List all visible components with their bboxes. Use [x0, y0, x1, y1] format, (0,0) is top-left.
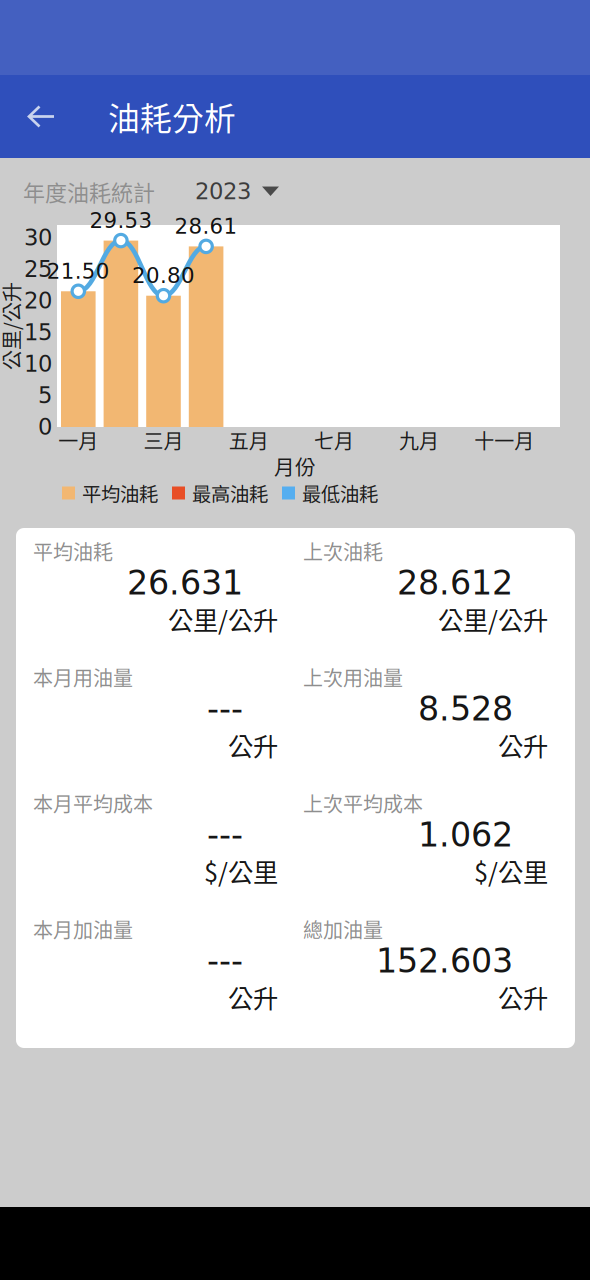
staticText: 28.61	[175, 214, 238, 239]
staticText: 一月	[58, 425, 98, 454]
staticText: 平均油耗	[33, 536, 113, 565]
staticText: 公里/公升	[0, 311, 55, 340]
staticText: 三月	[143, 425, 183, 454]
staticText: 29.53	[89, 208, 152, 233]
staticText: 公升	[498, 727, 548, 763]
staticText: 十一月	[474, 425, 534, 454]
staticText: 30	[24, 224, 52, 251]
staticText: 上次用油量	[303, 662, 403, 691]
staticText: 21.50	[47, 259, 110, 284]
staticText: 七月	[314, 425, 354, 454]
button[interactable]: 2023	[155, 165, 293, 217]
staticText: 最低油耗	[302, 479, 378, 507]
staticText: 公里/公升	[168, 601, 278, 637]
staticText: 九月	[399, 425, 439, 454]
staticText: 上次油耗	[303, 536, 383, 565]
staticText: 總加油量	[303, 914, 383, 943]
staticText: 20.80	[132, 263, 195, 288]
staticText: 月份	[274, 451, 316, 481]
staticText: 2023	[195, 178, 251, 205]
staticText: 28.612	[397, 564, 513, 602]
staticText: 26.631	[127, 564, 243, 602]
staticText: ---	[207, 690, 243, 728]
staticText: 15	[24, 319, 52, 345]
staticText: 公升	[228, 727, 278, 763]
staticText: 本月平均成本	[33, 788, 153, 817]
staticText: 1.062	[418, 816, 513, 854]
staticText: 20	[24, 288, 52, 314]
staticText: 0	[38, 414, 52, 440]
staticText: ---	[207, 942, 243, 980]
staticText: $/公里	[474, 853, 548, 889]
staticText: 公升	[228, 979, 278, 1015]
staticText: 152.603	[376, 942, 513, 980]
staticText: 本月加油量	[33, 914, 133, 943]
staticText: 公里/公升	[438, 601, 548, 637]
staticText: 公升	[498, 979, 548, 1015]
staticText: 油耗分析	[108, 93, 236, 139]
staticText: 上次平均成本	[303, 788, 423, 817]
staticText: 本月用油量	[33, 662, 133, 691]
staticText: 平均油耗	[82, 479, 158, 507]
staticText: 25	[24, 256, 52, 282]
staticText: 8.528	[418, 690, 513, 728]
staticText: 最高油耗	[192, 479, 268, 507]
button[interactable]: Back	[0, 75, 83, 158]
staticText: ---	[207, 816, 243, 854]
staticText: $/公里	[204, 853, 278, 889]
staticText: 10	[24, 351, 52, 377]
staticText: 年度油耗統計	[23, 176, 155, 207]
staticText: 5	[38, 382, 52, 409]
staticText: 五月	[229, 425, 269, 454]
